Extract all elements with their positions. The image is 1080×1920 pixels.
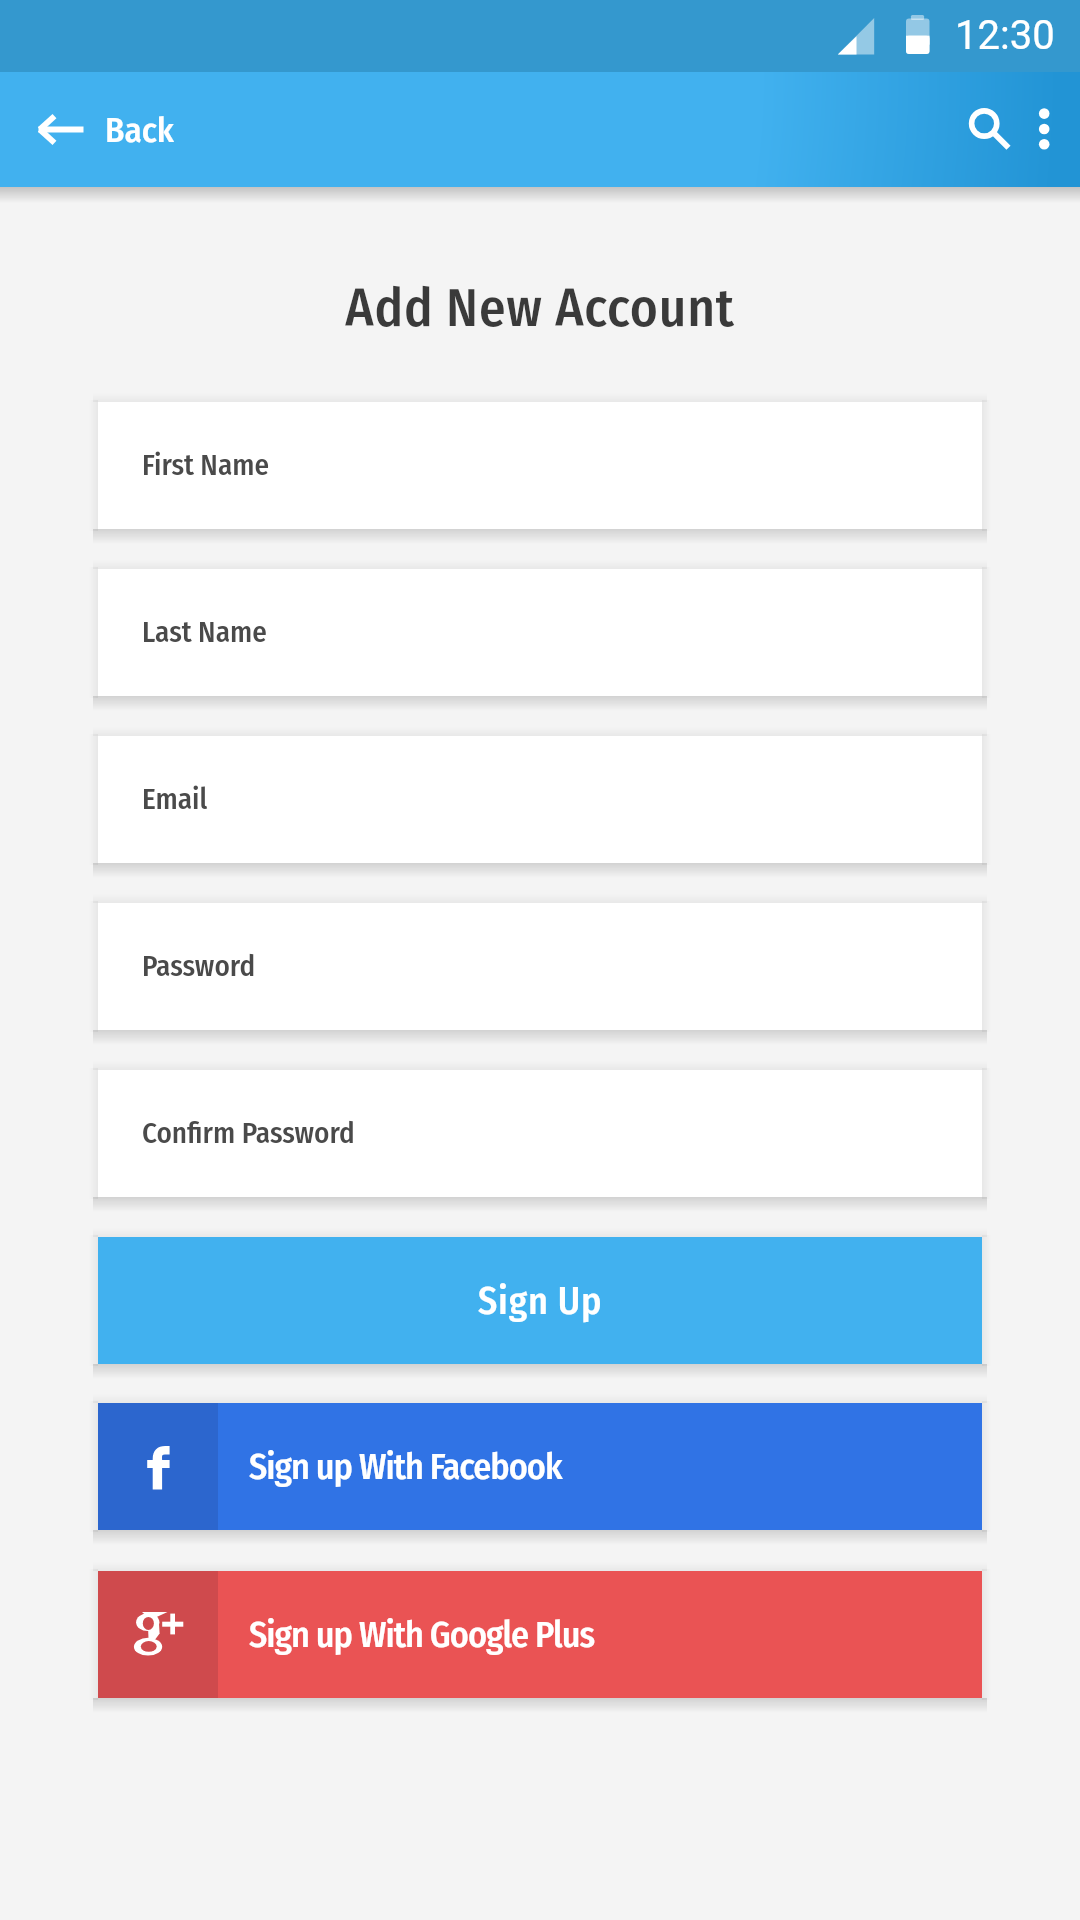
- staticText: Email: [142, 782, 208, 817]
- staticText: Sign up With Facebook: [249, 1445, 562, 1488]
- button[interactable]: Back: [0, 72, 200, 187]
- button[interactable]: Email: [98, 736, 982, 863]
- button[interactable]: More options: [1016, 72, 1073, 187]
- staticText: Sign up With Google Plus: [249, 1613, 595, 1656]
- button[interactable]: Search: [944, 72, 1024, 187]
- staticText: Back: [105, 109, 174, 151]
- button[interactable]: First Name: [98, 402, 982, 529]
- button[interactable]: Password: [98, 903, 982, 1030]
- staticText: Password: [142, 949, 256, 984]
- button[interactable]: Sign up With Google Plus: [98, 1571, 982, 1698]
- staticText: Confirm Password: [142, 1116, 355, 1151]
- staticText: Sign Up: [478, 1278, 603, 1324]
- button[interactable]: Sign up With Facebook: [98, 1403, 982, 1530]
- button[interactable]: Sign Up: [98, 1237, 982, 1364]
- staticText: Add New Account: [0, 276, 1080, 340]
- staticText: Last Name: [142, 615, 267, 650]
- staticText: First Name: [142, 448, 270, 483]
- staticText: 12:30: [955, 12, 1055, 59]
- button[interactable]: Confirm Password: [98, 1070, 982, 1197]
- button[interactable]: Last Name: [98, 569, 982, 696]
